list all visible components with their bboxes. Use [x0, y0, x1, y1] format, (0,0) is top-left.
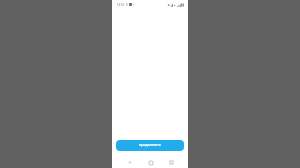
staticText: 14:52: [117, 3, 125, 7]
button[interactable]: Home: [140, 157, 161, 168]
button[interactable]: продолжить: [116, 140, 184, 151]
staticText: продолжить: [139, 142, 161, 147]
button[interactable]: Recents: [161, 157, 182, 168]
button[interactable]: Back: [119, 157, 140, 168]
